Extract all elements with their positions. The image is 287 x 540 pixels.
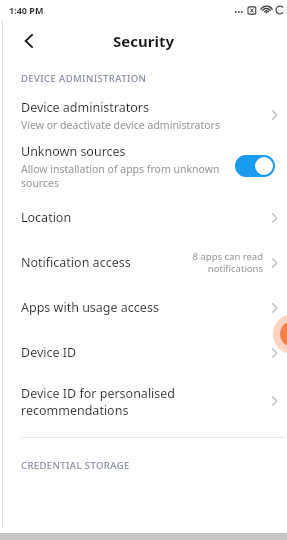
staticText: View or deactivate device administrators (21, 118, 220, 132)
staticText: DEVICE ADMINISTRATION (21, 72, 287, 85)
button[interactable]: Device ID (0, 330, 287, 375)
button[interactable]: Location (0, 195, 287, 240)
button[interactable]: Device ID for personalised recommendatio… (0, 375, 287, 427)
staticText: 8 apps can read notifications (185, 250, 263, 275)
staticText: 1:40 PM (9, 4, 44, 16)
button[interactable]: Unknown sources toggle, on (235, 155, 275, 177)
staticText: Device administrators (21, 99, 150, 116)
staticText: Allow installation of apps from unknown … (21, 162, 235, 190)
staticText: Security (113, 31, 174, 51)
staticText: Device ID (21, 344, 77, 361)
button[interactable]: Back (12, 24, 46, 58)
button[interactable]: Device administrators (0, 93, 287, 137)
staticText: Apps with usage access (21, 299, 159, 316)
button[interactable]: Apps with usage access (0, 285, 287, 330)
staticText: Notification access (21, 254, 131, 271)
staticText: Unknown sources (21, 143, 126, 160)
button[interactable]: Notification access (0, 240, 287, 285)
staticText: Device ID for personalised recommendatio… (21, 385, 267, 418)
staticText: Location (21, 209, 72, 226)
staticText: CREDENTIAL STORAGE (21, 459, 287, 472)
button[interactable]: Unknown sources (0, 137, 287, 195)
